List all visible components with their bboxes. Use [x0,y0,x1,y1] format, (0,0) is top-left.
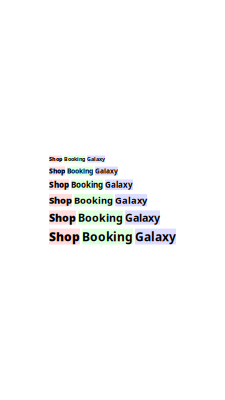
staticText: Booking [78,210,123,225]
staticText: Shop [49,167,65,175]
staticText: Shop [49,229,80,244]
staticText: Galaxy [125,210,160,225]
staticText: Booking [82,229,133,244]
staticText: Booking [74,194,113,206]
staticText: Shop [49,194,72,206]
staticText: Galaxy [115,194,147,206]
staticText: Shop [49,210,76,225]
staticText: Galaxy [95,167,118,175]
staticText: Booking [64,155,85,163]
staticText: Shop [49,155,62,163]
staticText: Booking [67,167,93,175]
staticText: Galaxy [135,229,176,244]
staticText: Galaxy [87,155,105,163]
staticText: Shop [49,179,69,190]
staticText: Galaxy [105,179,133,190]
staticText: Booking [71,179,103,190]
